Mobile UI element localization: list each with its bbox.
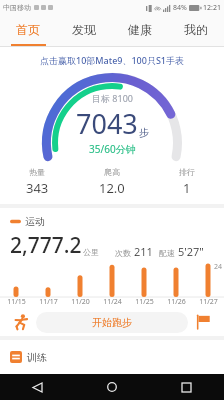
button[interactable]: 点击赢取10部Mate9、100只S1手表 bbox=[0, 47, 224, 73]
staticText: 首页 bbox=[16, 22, 40, 37]
button[interactable]: 首页 bbox=[0, 15, 56, 44]
button[interactable]: 爬高 bbox=[74, 164, 149, 200]
staticText: 84% bbox=[173, 3, 187, 13]
staticText: 11/24 bbox=[103, 297, 122, 307]
staticText: 211 bbox=[134, 244, 153, 259]
staticText: 点击赢取10部Mate9、100只S1手表 bbox=[40, 54, 185, 66]
staticText: 2,777.2 bbox=[10, 231, 82, 260]
button[interactable]: Goal flag bbox=[192, 311, 214, 333]
staticText: 中国移动 bbox=[3, 3, 31, 12]
staticText: 11/17 bbox=[39, 297, 58, 307]
staticText: 343 bbox=[26, 179, 49, 197]
staticText: 1 bbox=[183, 179, 191, 197]
staticText: 7043 bbox=[76, 105, 138, 142]
staticText: 35/60分钟 bbox=[89, 142, 136, 156]
staticText: 5'27" bbox=[178, 244, 204, 259]
button[interactable]: 训练 bbox=[10, 340, 224, 374]
button[interactable]: Recent apps bbox=[149, 374, 224, 400]
staticText: 我的 bbox=[184, 22, 208, 37]
staticText: 11/15 bbox=[7, 297, 26, 307]
button[interactable]: Running bbox=[10, 311, 32, 333]
staticText: 目标 8100 bbox=[92, 92, 133, 104]
staticText: 训练 bbox=[27, 351, 47, 364]
staticText: 步 bbox=[139, 126, 149, 139]
staticText: 爬高 bbox=[104, 167, 120, 177]
staticText: 发现 bbox=[72, 22, 96, 37]
staticText: 健康 bbox=[128, 22, 152, 37]
button[interactable]: 热量 bbox=[0, 164, 74, 200]
staticText: 公里 bbox=[83, 247, 99, 257]
staticText: 热量 bbox=[29, 167, 45, 177]
button[interactable]: Home bbox=[74, 374, 149, 400]
staticText: 11/25 bbox=[135, 297, 154, 307]
staticText: 配速 bbox=[159, 248, 175, 258]
staticText: 次数 bbox=[115, 248, 131, 258]
staticText: 24 bbox=[214, 262, 223, 272]
staticText: 11/20 bbox=[71, 297, 90, 307]
button[interactable]: 我的 bbox=[168, 15, 224, 44]
staticText: 12.0 bbox=[99, 179, 125, 197]
staticText: 11/26 bbox=[167, 297, 186, 307]
staticText: 运动 bbox=[25, 215, 45, 228]
staticText: 开始跑步 bbox=[92, 316, 132, 329]
button[interactable]: 发现 bbox=[56, 15, 112, 44]
button[interactable]: 排行 bbox=[149, 164, 224, 200]
button[interactable]: Back bbox=[0, 374, 74, 400]
button[interactable]: 健康 bbox=[112, 15, 168, 44]
staticText: 12:21 bbox=[203, 3, 221, 13]
staticText: 11/27 bbox=[199, 297, 218, 307]
staticText: 排行 bbox=[179, 167, 195, 177]
button[interactable]: 开始跑步 bbox=[36, 312, 188, 333]
